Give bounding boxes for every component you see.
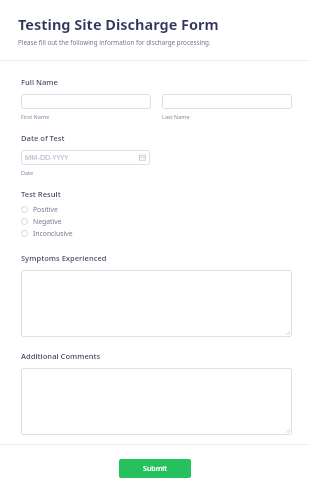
staticText: Negative [33, 217, 62, 226]
button[interactable] [21, 368, 292, 435]
staticText: Date of Test [21, 133, 65, 143]
button[interactable]: Submit [119, 459, 191, 478]
staticText: Additional Comments [21, 351, 101, 361]
button[interactable] [21, 94, 151, 109]
staticText: First Name [21, 113, 50, 120]
button[interactable] [162, 94, 292, 109]
button[interactable]: Negative [21, 215, 292, 227]
staticText: Positive [33, 205, 58, 214]
staticText: Date [21, 169, 34, 176]
staticText: Last Name [162, 113, 190, 120]
staticText: Symptoms Experienced [21, 253, 107, 263]
staticText: Please fill out the following informatio… [18, 38, 211, 47]
staticText: Full Name [21, 77, 58, 87]
staticText: Testing Site Discharge Form [18, 14, 219, 34]
staticText: MM-DD-YYYY [25, 153, 139, 163]
button[interactable] [21, 270, 292, 337]
button[interactable]: MM-DD-YYYY [21, 150, 150, 165]
button[interactable]: Positive [21, 203, 292, 215]
button[interactable]: Inconclusive [21, 227, 292, 239]
staticText: Inconclusive [33, 229, 73, 238]
other: Pick date [139, 154, 146, 161]
staticText: Submit [143, 464, 167, 474]
staticText: Test Result [21, 189, 61, 199]
